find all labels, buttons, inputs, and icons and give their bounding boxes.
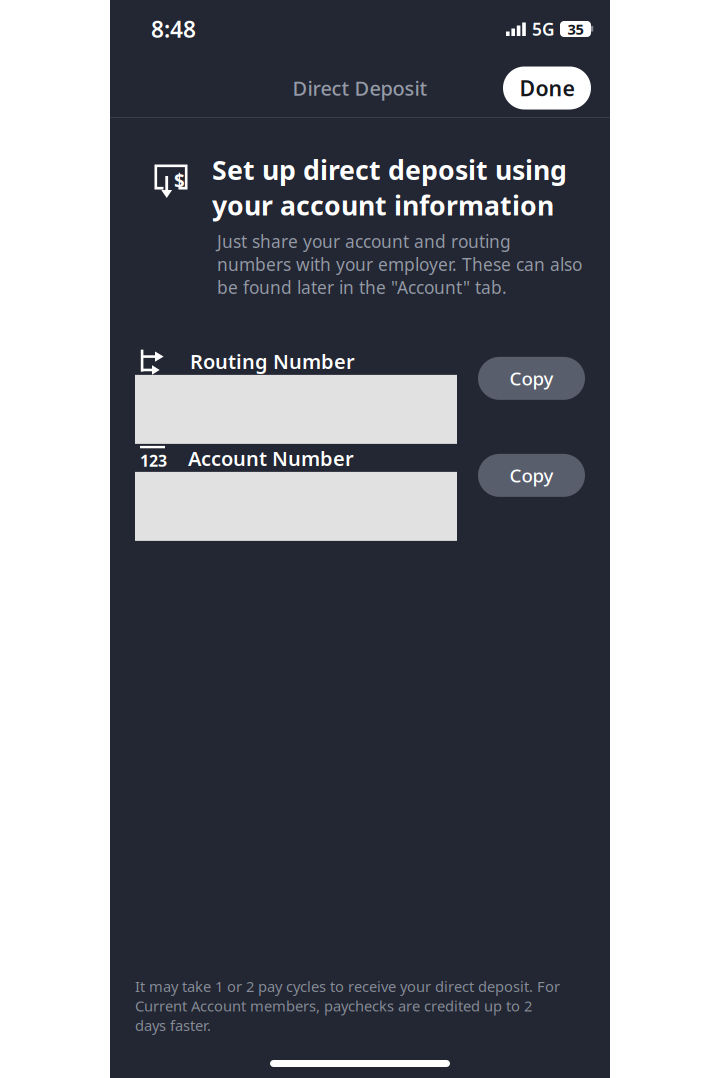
button[interactable]: Copy (478, 357, 585, 400)
staticText: Direct Deposit (292, 75, 427, 101)
staticText: Account Number (188, 445, 354, 471)
button[interactable]: Done (503, 66, 591, 109)
staticText: 8:48 (151, 14, 196, 44)
staticText: 5G (532, 17, 555, 40)
staticText: Just share your account and routing numb… (217, 230, 582, 299)
staticText: Set up direct deposit using your account… (212, 152, 567, 223)
staticText: $ (174, 168, 185, 193)
staticText: Copy (509, 463, 553, 488)
staticText: Routing Number (190, 348, 355, 374)
staticText: Done (519, 74, 574, 102)
button[interactable]: Copy (478, 454, 585, 497)
staticText: 123 (140, 450, 167, 471)
staticText: It may take 1 or 2 pay cycles to receive… (135, 977, 560, 1035)
staticText: Copy (509, 366, 553, 391)
staticText: 35 (567, 19, 583, 39)
